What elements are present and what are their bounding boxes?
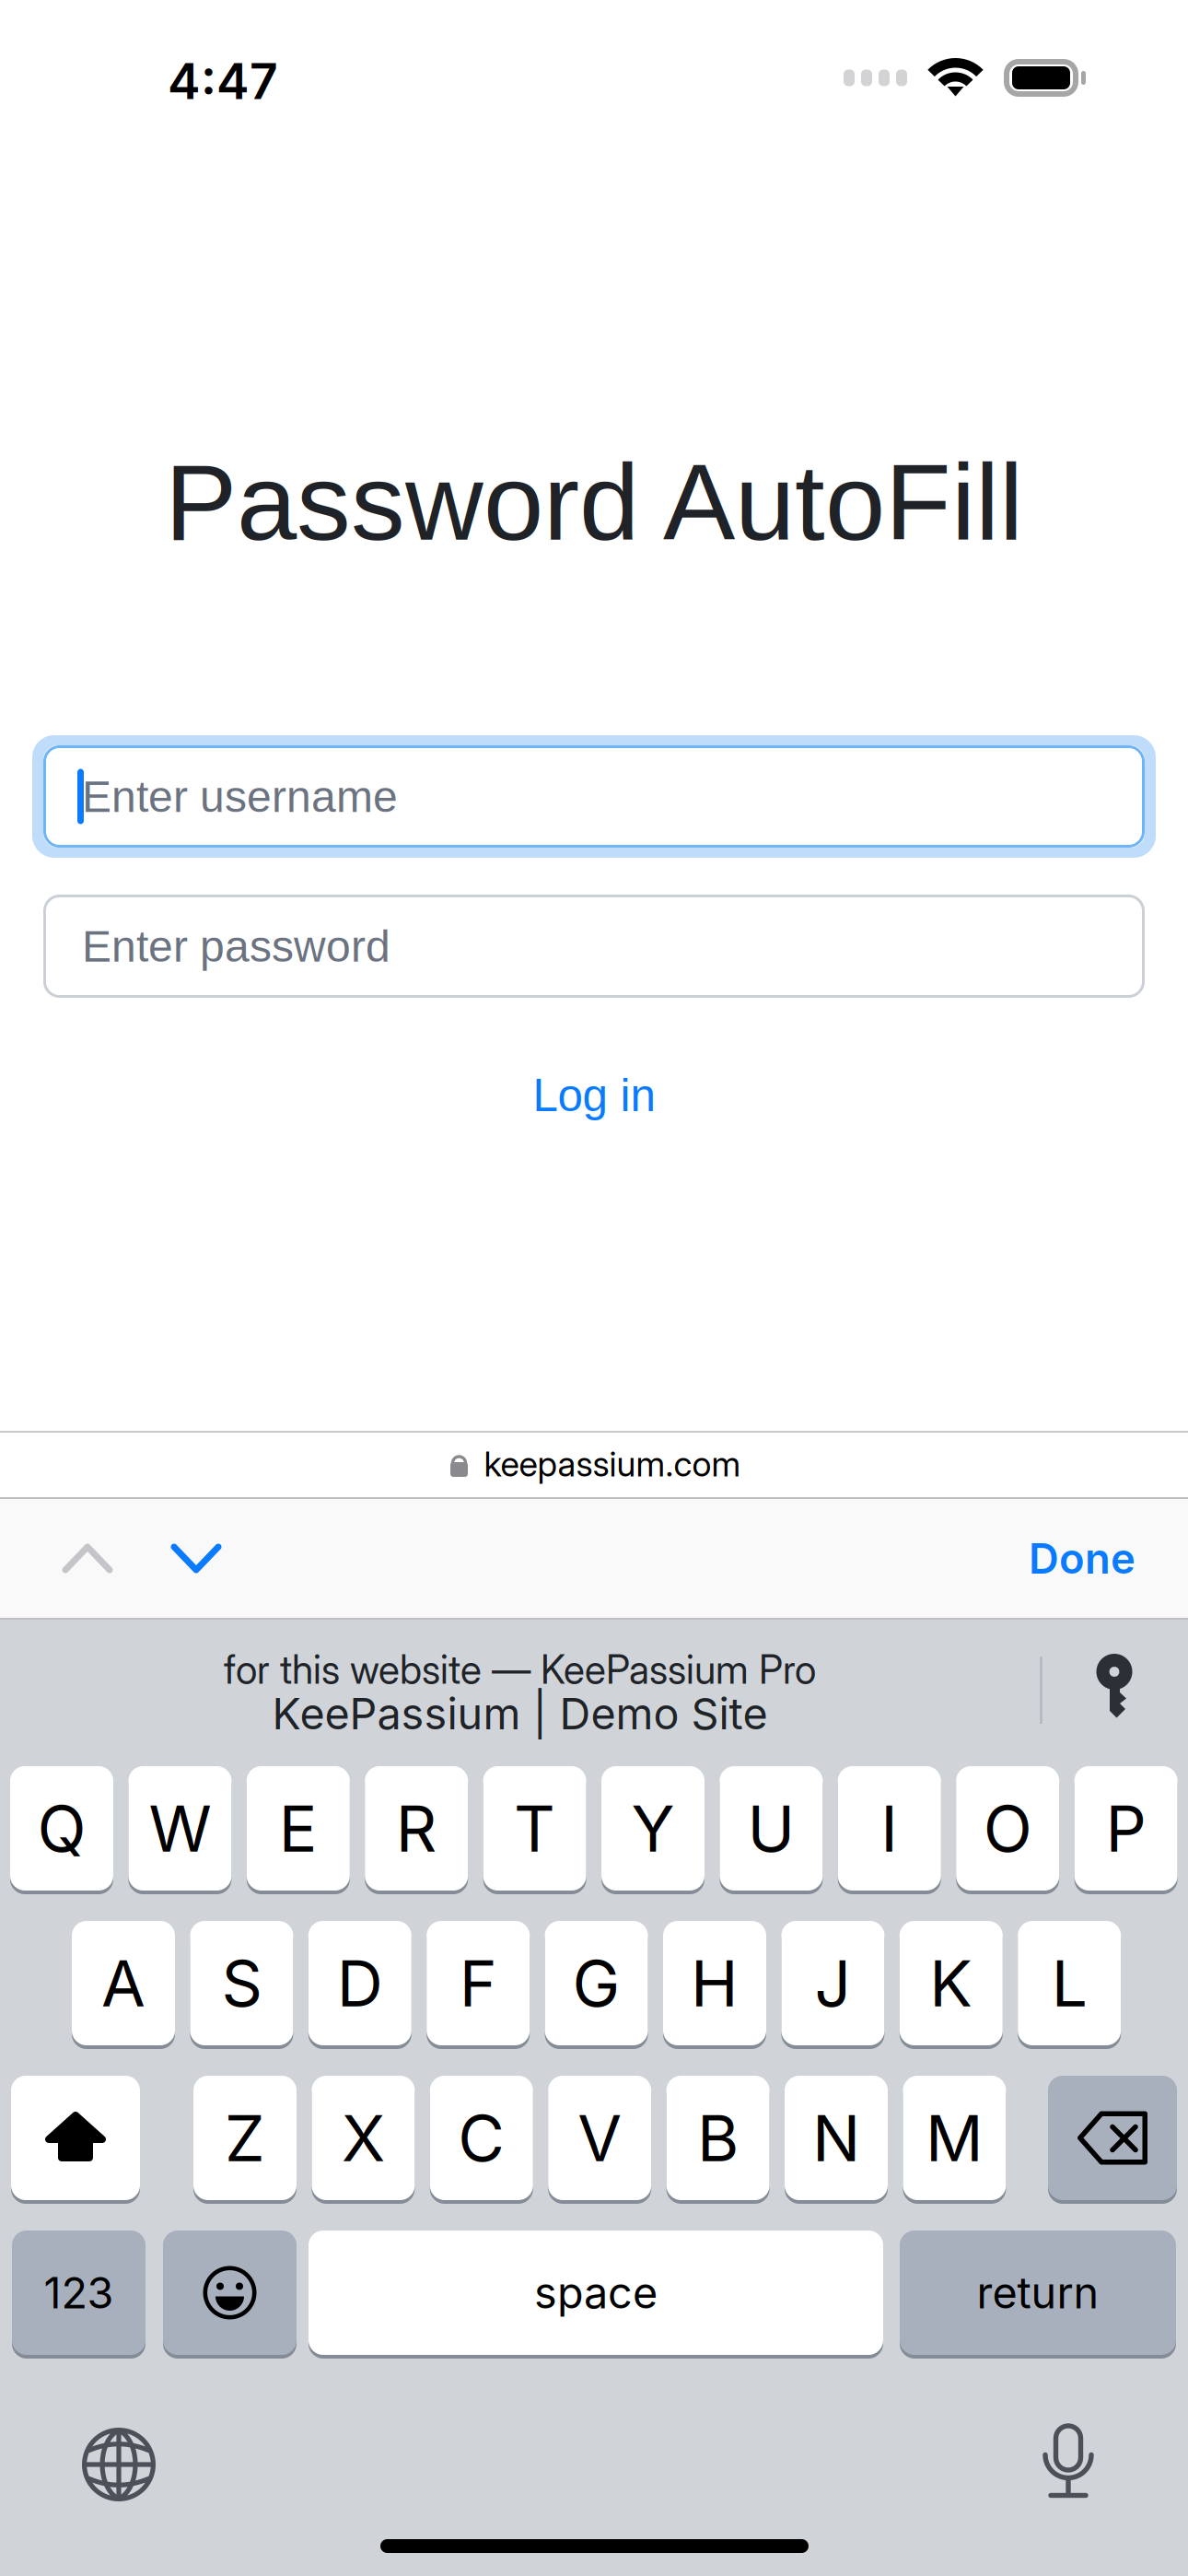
staticText: Q (37, 1790, 86, 1867)
staticText: N (812, 2099, 860, 2177)
button[interactable]: I (838, 1766, 941, 1894)
button[interactable]: C (430, 2076, 533, 2204)
button[interactable]: X (312, 2076, 415, 2204)
button[interactable]: E (247, 1766, 350, 1894)
staticText: for this website — KeePassium Pro (224, 1646, 816, 1693)
button[interactable]: space (309, 2231, 883, 2359)
button[interactable]: J (781, 1921, 884, 2049)
staticText: Z (225, 2099, 265, 2177)
staticText: keepassium.com (484, 1443, 741, 1485)
button[interactable]: Q (10, 1766, 113, 1894)
button[interactable]: N (785, 2076, 888, 2204)
staticText: L (1051, 1945, 1087, 2022)
staticText: W (149, 1790, 211, 1867)
button[interactable]: KeePassium passwords (1054, 1620, 1174, 1753)
staticText: M (925, 2099, 983, 2177)
button[interactable]: P (1074, 1766, 1178, 1894)
staticText: D (337, 1945, 383, 2022)
button[interactable]: M (903, 2076, 1006, 2204)
button[interactable]: S (190, 1921, 293, 2049)
staticText: J (814, 1945, 851, 2022)
button[interactable]: Emoji (163, 2231, 297, 2359)
button[interactable]: Delete (1048, 2076, 1177, 2204)
staticText: Enter password (82, 922, 390, 971)
staticText: G (572, 1945, 620, 2022)
button[interactable]: A (72, 1921, 175, 2049)
staticText: 4:47 (168, 51, 278, 111)
staticText: F (459, 1945, 497, 2022)
staticText: 123 (44, 2267, 114, 2319)
staticText: X (342, 2099, 385, 2177)
staticText: I (881, 1790, 898, 1867)
button[interactable]: Log in (483, 1060, 705, 1130)
button[interactable]: R (365, 1766, 468, 1894)
button[interactable]: K (900, 1921, 1003, 2049)
staticText: V (578, 2099, 622, 2177)
button[interactable]: keepassium.com (0, 1433, 1188, 1495)
button[interactable]: Dictation (1008, 2411, 1128, 2512)
staticText: O (983, 1790, 1032, 1867)
staticText: E (279, 1790, 318, 1867)
staticText: P (1106, 1790, 1146, 1867)
staticText: U (747, 1790, 795, 1867)
button[interactable]: L (1018, 1921, 1121, 2049)
staticText: T (514, 1790, 555, 1867)
staticText: Log in (533, 1070, 655, 1121)
button[interactable]: B (666, 2076, 770, 2204)
button[interactable]: Z (193, 2076, 297, 2204)
button[interactable]: Done (999, 1497, 1165, 1620)
staticText: K (929, 1945, 973, 2022)
button[interactable]: W (128, 1766, 232, 1894)
button[interactable]: H (663, 1921, 766, 2049)
staticText: B (697, 2099, 739, 2177)
button[interactable]: O (956, 1766, 1059, 1894)
staticText: Y (631, 1790, 675, 1867)
staticText: Password AutoFill (165, 442, 1023, 563)
staticText: Enter username (82, 772, 398, 821)
staticText: space (534, 2267, 658, 2319)
button[interactable]: Previous field (31, 1497, 144, 1620)
staticText: A (101, 1945, 146, 2022)
button[interactable]: Next keyboard (59, 2414, 179, 2515)
button[interactable]: Y (601, 1766, 705, 1894)
staticText: R (396, 1790, 437, 1867)
button[interactable]: for this website — KeePassium Pro (0, 1620, 1040, 1753)
staticText: Done (1029, 1533, 1136, 1584)
button[interactable]: 123 (12, 2231, 146, 2359)
button[interactable]: F (427, 1921, 530, 2049)
staticText: KeePassium | Demo Site (272, 1688, 768, 1740)
button[interactable]: D (308, 1921, 411, 2049)
button[interactable]: Shift (11, 2076, 140, 2204)
button[interactable]: V (548, 2076, 651, 2204)
staticText: return (977, 2267, 1099, 2319)
button[interactable]: return (900, 2231, 1176, 2359)
button[interactable]: T (483, 1766, 586, 1894)
staticText: C (458, 2099, 505, 2177)
staticText: H (691, 1945, 739, 2022)
button[interactable]: G (545, 1921, 648, 2049)
button[interactable]: Next field (140, 1497, 252, 1620)
button[interactable]: U (720, 1766, 823, 1894)
staticText: S (221, 1945, 262, 2022)
